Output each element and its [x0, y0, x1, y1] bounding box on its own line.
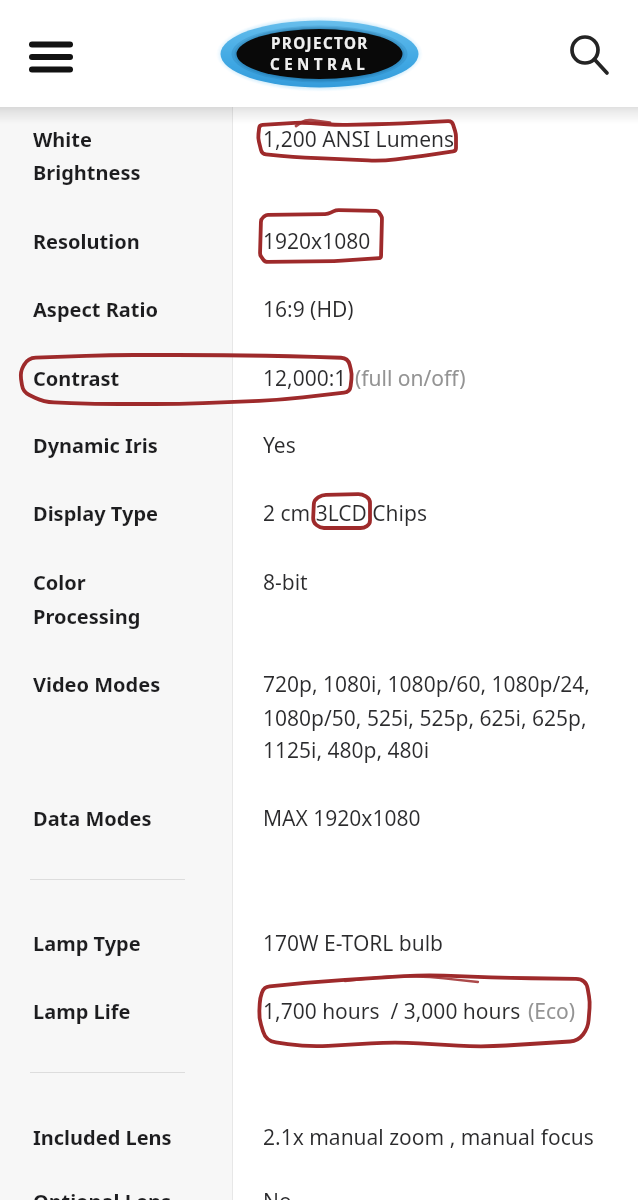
- staticText: Aspect Ratio: [33, 296, 158, 323]
- button[interactable]: Search: [556, 22, 618, 87]
- staticText: Lamp Type: [33, 930, 141, 957]
- staticText: Optional Lens: [33, 1188, 171, 1200]
- staticText: 1080p/50, 525i, 525p, 625i, 625p,: [263, 704, 587, 733]
- staticText: 1,700 hours / 3,000 hours: [263, 997, 521, 1026]
- staticText: Yes: [263, 431, 296, 460]
- staticText: Processing: [33, 603, 141, 630]
- staticText: 2.1x manual zoom , manual focus: [263, 1123, 594, 1152]
- staticText: (Eco): [528, 997, 576, 1026]
- staticText: PROJECTOR: [271, 33, 369, 54]
- staticText: 1920x1080: [263, 227, 371, 256]
- staticText: Brightness: [33, 159, 141, 186]
- staticText: 8-bit: [263, 568, 308, 597]
- staticText: Dynamic Iris: [33, 432, 158, 459]
- staticText: 2 cm 3LCD Chips: [263, 499, 427, 528]
- staticText: Display Type: [33, 500, 158, 527]
- staticText: 1,200 ANSI Lumens: [263, 125, 455, 154]
- staticText: White: [33, 126, 92, 153]
- staticText: (full on/off): [355, 364, 466, 393]
- staticText: Data Modes: [33, 805, 152, 832]
- staticText: 170W E-TORL bulb: [263, 929, 444, 958]
- staticText: Lamp Life: [33, 998, 131, 1025]
- staticText: 16:9 (HD): [263, 295, 354, 324]
- staticText: Resolution: [33, 228, 140, 255]
- staticText: Contrast: [33, 365, 120, 392]
- staticText: 1125i, 480p, 480i: [263, 736, 430, 765]
- staticText: 12,000:1: [263, 364, 347, 393]
- button[interactable]: Menu: [16, 22, 86, 87]
- staticText: No: [263, 1187, 292, 1200]
- staticText: Included Lens: [33, 1124, 172, 1151]
- staticText: MAX 1920x1080: [263, 804, 421, 833]
- button[interactable]: ProjectorCentral: [211, 10, 428, 98]
- staticText: 720p, 1080i, 1080p/60, 1080p/24,: [263, 670, 590, 699]
- staticText: Color: [33, 569, 86, 596]
- staticText: Video Modes: [33, 671, 161, 698]
- staticText: CENTRAL: [270, 54, 370, 75]
